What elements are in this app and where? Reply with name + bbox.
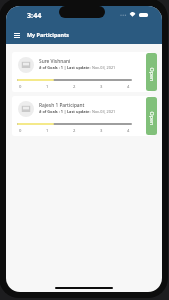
staticText: 0 [19, 128, 22, 134]
staticText: 4 [127, 128, 130, 134]
staticText: # of Goals : 1 | Last update: [39, 65, 92, 70]
staticText: Open [148, 111, 155, 125]
staticText: Sure Vishnani [39, 58, 71, 65]
button[interactable]: Rajesh 1 Participant [12, 96, 152, 136]
staticText: 2 [73, 128, 76, 134]
button[interactable]: Sure Vishnani [12, 52, 152, 92]
staticText: 2 [73, 84, 76, 90]
staticText: Nov-03, 2021 [92, 109, 116, 114]
button[interactable]: Open [146, 53, 157, 91]
staticText: 3 [100, 84, 103, 90]
staticText: 1 [46, 84, 49, 90]
staticText: 3 [100, 128, 103, 134]
staticText: 1 [46, 128, 49, 134]
button[interactable]: Open navigation menu [10, 28, 24, 42]
staticText: 0 [19, 84, 22, 90]
button[interactable]: Open [146, 97, 157, 135]
staticText: # of Goals : 1 | Last update: [39, 109, 92, 114]
staticText: My Participants [27, 31, 70, 38]
staticText: Open [148, 67, 155, 81]
staticText: 4 [127, 84, 130, 90]
staticText: Rajesh 1 Participant [39, 102, 85, 109]
staticText: 3:44 [27, 10, 42, 20]
staticText: Nov-03, 2021 [92, 65, 116, 70]
